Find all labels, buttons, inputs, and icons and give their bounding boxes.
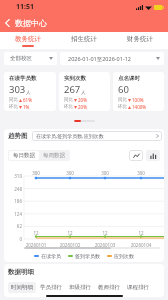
staticText: 同比 (9, 97, 18, 103)
staticText: 300 (99, 170, 111, 176)
staticText: 签到学员数 (75, 253, 100, 259)
staticText: 同比 (64, 97, 73, 103)
staticText: 环比 (9, 104, 18, 110)
button[interactable]: 在读学员,签到学员数,应到次数 (32, 131, 162, 141)
button[interactable]: 招生统计 (56, 32, 112, 49)
staticText: 303 (9, 83, 26, 96)
staticText: 每周数据 (43, 152, 65, 159)
staticText: 趋势图 (8, 132, 28, 140)
staticText: 0 (4, 236, 22, 242)
staticText: 310 (4, 173, 22, 179)
staticText: 财务统计 (127, 35, 153, 43)
button[interactable]: Back (0, 14, 15, 32)
staticText: 61% (23, 97, 32, 103)
staticText: 20260103 (94, 242, 116, 248)
button[interactable]: 课程排行 (124, 282, 152, 293)
staticText: 20260102 (59, 242, 81, 248)
staticText: 300 (135, 170, 147, 176)
staticText: 教务统计 (15, 35, 41, 43)
staticText: 12 (99, 230, 111, 236)
staticText: 20% (78, 104, 87, 110)
staticText: 12 (30, 230, 42, 236)
button[interactable]: 教师排行 (95, 282, 123, 293)
staticText: 2026-01-01至2026-01-12 (68, 55, 131, 63)
button[interactable]: 2026-01-01至2026-01-12 (60, 52, 164, 65)
staticText: 12 (135, 230, 147, 236)
staticText: 招生统计 (71, 35, 97, 43)
staticText: 12 (64, 230, 76, 236)
staticText: 课程排行 (127, 284, 149, 291)
button[interactable]: 班级排行 (66, 282, 94, 293)
staticText: 数据中心 (15, 18, 47, 28)
staticText: 环比 (118, 104, 127, 110)
button[interactable]: 全部校区 (4, 52, 57, 65)
button[interactable]: 学员排行 (37, 282, 65, 293)
staticText: 100% (132, 97, 144, 103)
staticText: 学员排行 (40, 284, 62, 291)
staticText: 267 (64, 83, 81, 96)
staticText: 点名课时 (118, 75, 140, 82)
staticText: 300 (30, 170, 42, 176)
staticText: 每日数据 (13, 152, 35, 159)
button[interactable]: Line chart (129, 150, 143, 161)
staticText: 在读学员,签到学员数,应到次数 (36, 133, 104, 140)
staticText: 教师排行 (98, 284, 120, 291)
staticText: 在读学员 (41, 253, 61, 259)
staticText: 应到次数 (114, 253, 134, 259)
staticText: 在读学员数 (9, 75, 37, 82)
button[interactable]: 教务统计 (0, 32, 56, 49)
button[interactable]: 时间明细 (8, 282, 36, 293)
staticText: 60 (118, 83, 129, 96)
staticText: 全部校区 (10, 55, 32, 62)
staticText: 1% (23, 104, 30, 110)
staticText: 时间明细 (11, 284, 33, 291)
staticText: 11:51 (16, 2, 34, 12)
staticText: 同比 (118, 97, 127, 103)
button[interactable]: Bar chart (146, 150, 160, 161)
staticText: 300 (64, 170, 76, 176)
staticText: 20260104 (130, 242, 152, 248)
staticText: 人 (81, 90, 86, 96)
staticText: 班级排行 (69, 284, 91, 291)
button[interactable]: 财务统计 (112, 32, 168, 49)
staticText: 62 (4, 223, 22, 229)
staticText: 20% (78, 97, 87, 103)
staticText: 人 (26, 90, 31, 96)
staticText: 数据明细 (8, 268, 34, 276)
button[interactable]: 每周数据 (39, 151, 69, 160)
staticText: 实到次数 (64, 75, 86, 82)
staticText: 环比 (64, 104, 73, 110)
staticText: 186 (4, 198, 22, 204)
staticText: 20260101 (25, 242, 47, 248)
button[interactable]: 每日数据 (9, 151, 39, 160)
staticText: 124 (4, 211, 22, 217)
staticText: 248 (4, 186, 22, 192)
staticText: 1400% (132, 104, 147, 110)
